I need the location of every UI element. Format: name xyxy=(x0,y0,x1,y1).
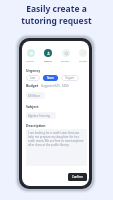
button[interactable]: $30/hour xyxy=(26,92,45,99)
staticText: Urgency xyxy=(26,68,41,73)
staticText: I am looking for a math tutor that can h… xyxy=(28,131,85,147)
staticText: Algebra Tutoring xyxy=(28,114,51,118)
staticText: Review xyxy=(79,59,87,62)
button[interactable]: Review xyxy=(79,49,87,62)
staticText: Budget xyxy=(61,59,70,62)
staticText: Soon xyxy=(47,76,54,80)
staticText: Urgent xyxy=(65,76,75,80)
staticText: $30/hour xyxy=(28,94,41,98)
staticText: Easily create a xyxy=(26,3,87,15)
staticText: Description xyxy=(26,123,46,128)
staticText: tutoring request xyxy=(21,15,92,27)
button[interactable]: Low xyxy=(26,75,40,81)
staticText: Budget xyxy=(26,83,39,88)
button[interactable]: I am looking for a math tutor that can h… xyxy=(26,129,87,166)
staticText: Suggested $25 - $40/h xyxy=(41,84,70,88)
staticText: Confirm xyxy=(72,175,83,179)
button[interactable]: Algebra Tutoring xyxy=(26,112,56,119)
button[interactable]: Confirm xyxy=(68,173,87,181)
button[interactable]: Budget xyxy=(61,49,70,62)
staticText: Subject xyxy=(26,59,35,62)
button[interactable]: Subject xyxy=(26,49,35,62)
staticText: Subject xyxy=(26,104,39,109)
button[interactable]: Details xyxy=(44,49,52,62)
button[interactable]: Soon xyxy=(43,75,58,81)
staticText: Details xyxy=(44,59,52,62)
staticText: Low xyxy=(30,76,36,80)
button[interactable]: Urgent xyxy=(61,75,79,81)
